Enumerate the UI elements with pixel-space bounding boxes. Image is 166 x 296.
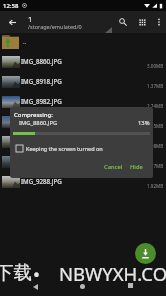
button[interactable]: IMG_8918.JPG <box>0 73 166 93</box>
staticText: IMG_8918.JPG <box>21 77 62 85</box>
button[interactable]: IMG_8860.JPG <box>0 53 166 73</box>
staticText: Hide <box>130 163 143 171</box>
button[interactable]: IMG_9016.JPG <box>0 113 166 133</box>
staticText: Compressing: <box>14 111 53 119</box>
button[interactable]: Back <box>27 278 44 295</box>
staticText: 3.00MB <box>147 63 164 69</box>
staticText: .. <box>23 37 27 46</box>
button[interactable]: .. <box>0 33 166 53</box>
staticText: IMG_9104.JPG <box>21 137 62 145</box>
button[interactable]: Home <box>74 278 91 295</box>
button[interactable]: IMG_9210.JPG <box>0 153 166 173</box>
staticText: /storage/emulated/0 <box>28 23 82 30</box>
staticText: 下载 <box>0 261 32 284</box>
staticText: 2.17MB <box>147 163 164 169</box>
button[interactable]: More options <box>152 11 166 33</box>
staticText: NBWYXH.COM <box>59 261 166 286</box>
staticText: 12:58 <box>3 2 19 10</box>
button[interactable]: Search <box>113 11 133 33</box>
staticText: • <box>33 261 40 286</box>
staticText: Keeping the screen turned on <box>26 145 103 152</box>
staticText: 1.37MB <box>147 83 164 89</box>
button[interactable]: Extract <box>135 243 156 264</box>
staticText: 1 <box>28 14 33 24</box>
staticText: 2.55MB <box>147 123 164 129</box>
button[interactable]: Recents <box>122 277 139 294</box>
staticText: 1.92MB <box>147 183 164 189</box>
staticText: IMG_8982.JPG <box>21 97 62 105</box>
button[interactable]: IMG_9288.JPG <box>0 173 166 193</box>
staticText: IMG_8860.JPG <box>21 57 62 65</box>
staticText: 2.74MB <box>147 103 164 109</box>
staticText: IMG_9288.JPG <box>21 177 62 185</box>
button[interactable]: Keeping the screen turned on <box>16 143 103 153</box>
staticText: 13% <box>138 119 150 127</box>
staticText: IMG_8860.JPG <box>19 119 58 127</box>
staticText: Cancel <box>104 163 123 171</box>
button[interactable]: Hide <box>127 161 146 173</box>
button[interactable]: Cancel <box>101 161 126 173</box>
button[interactable]: IMG_8982.JPG <box>0 93 166 113</box>
staticText: 3.08MB <box>147 143 164 149</box>
button[interactable]: IMG_9104.JPG <box>0 133 166 153</box>
button[interactable]: Grid view <box>133 11 152 33</box>
staticText: IMG_9016.JPG <box>21 117 62 125</box>
button[interactable]: Back <box>0 11 24 33</box>
